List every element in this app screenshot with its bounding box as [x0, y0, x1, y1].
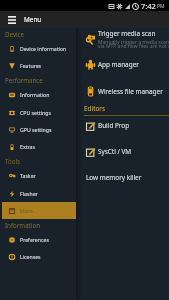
button[interactable]: Preferences [0, 231, 76, 248]
button[interactable]: Build Prop [82, 119, 169, 132]
button[interactable]: Flasher [0, 185, 76, 202]
staticText: Manually trigger a media scan, in case v… [98, 39, 169, 50]
staticText: CPU settings [20, 109, 51, 116]
button[interactable]: Features [0, 57, 76, 74]
staticText: Extras [20, 143, 35, 150]
staticText: Trigger media scan [98, 29, 156, 38]
staticText: GPU settings [20, 126, 52, 133]
staticText: Information [20, 91, 50, 98]
button[interactable]: Trigger media scan [82, 27, 169, 52]
staticText: Menu [24, 15, 42, 24]
staticText: Editors [84, 104, 106, 113]
staticText: Flasher [20, 190, 38, 197]
staticText: More... [20, 207, 37, 214]
staticText: Tools [5, 157, 21, 165]
staticText: Build Prop [98, 121, 130, 130]
staticText: PM [157, 3, 165, 10]
staticText: SysCtl / VM [98, 147, 132, 156]
button[interactable]: Wireless file manager [82, 85, 169, 98]
button[interactable]: Information [0, 86, 76, 103]
staticText: Tasker [20, 172, 36, 179]
staticText: App manager [98, 60, 139, 69]
staticText: Preferences [20, 236, 49, 243]
staticText: Low memory killer [86, 173, 142, 182]
staticText: Licenses [20, 253, 41, 260]
button[interactable]: More... [0, 202, 76, 219]
staticText: Device information [20, 45, 67, 52]
button[interactable]: Tasker [0, 167, 76, 184]
button[interactable]: Licenses [0, 248, 76, 265]
button[interactable]: GPU settings [0, 121, 76, 138]
staticText: Wireless file manager [98, 87, 163, 96]
button[interactable]: Low memory killer [82, 171, 169, 184]
button[interactable]: CPU settings [0, 104, 76, 121]
button[interactable]: Device information [0, 40, 76, 57]
staticText: 7:42 [141, 1, 156, 11]
button[interactable]: SysCtl / VM [82, 145, 169, 158]
staticText: Device [5, 30, 25, 38]
button[interactable]: Extras [0, 138, 76, 155]
staticText: Information [5, 221, 41, 229]
button[interactable]: App manager [82, 58, 169, 71]
staticText: Performance [5, 76, 43, 84]
staticText: Features [20, 62, 42, 69]
button[interactable]: Open navigation drawer [0, 11, 24, 28]
